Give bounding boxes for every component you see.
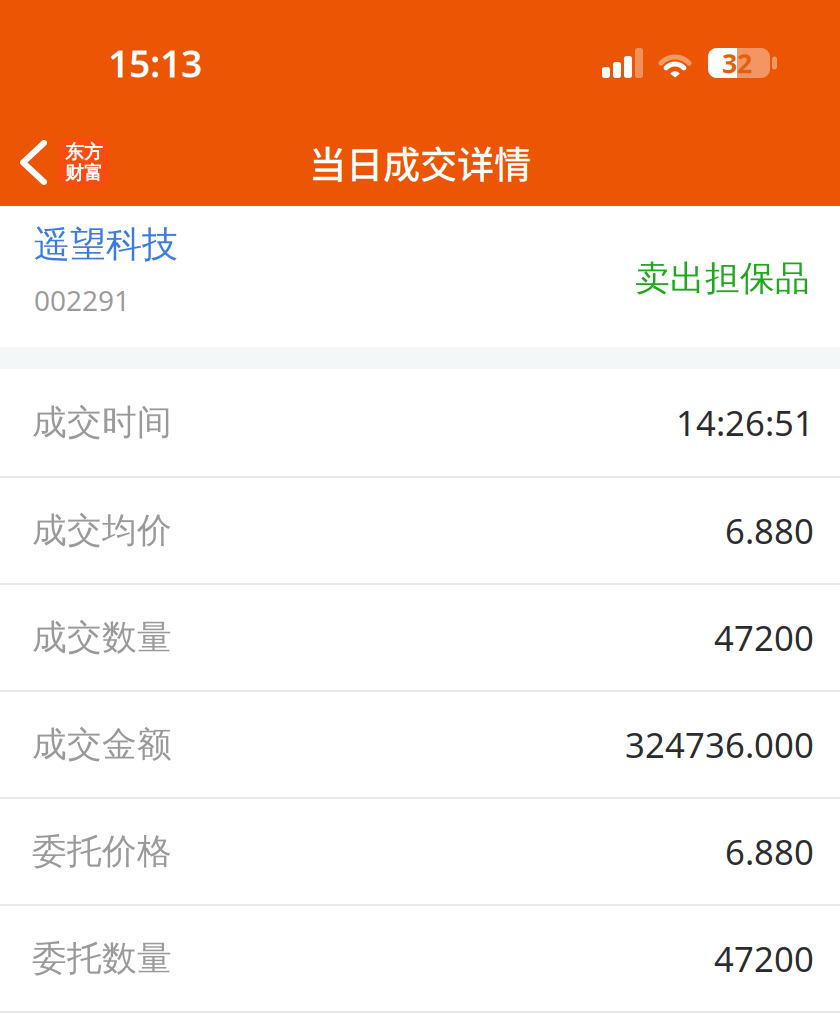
staticText: 002291 xyxy=(34,281,130,319)
staticText: 47200 xyxy=(714,614,814,660)
staticText: 当日成交详情 xyxy=(309,135,531,190)
staticText: 委托数量 xyxy=(32,937,172,980)
staticText: 6.880 xyxy=(725,507,814,553)
staticText: 成交数量 xyxy=(32,616,172,659)
staticText: 32 xyxy=(722,45,752,81)
staticText: 卖出担保品 xyxy=(635,257,810,300)
staticText: 324736.000 xyxy=(625,721,814,767)
staticText: 6.880 xyxy=(725,828,814,874)
staticText: 14:26:51 xyxy=(676,399,814,445)
staticText: 财富 xyxy=(65,161,103,184)
staticText: 15:13 xyxy=(108,38,202,88)
staticText: 委托价格 xyxy=(32,830,172,873)
button[interactable]: 返回 xyxy=(0,138,109,187)
staticText: 47200 xyxy=(714,935,814,981)
staticText: 成交时间 xyxy=(32,401,172,444)
staticText: 东方 xyxy=(65,141,103,163)
staticText: 遥望科技 xyxy=(34,222,178,266)
staticText: 成交金额 xyxy=(32,723,172,766)
staticText: 成交均价 xyxy=(32,509,172,552)
